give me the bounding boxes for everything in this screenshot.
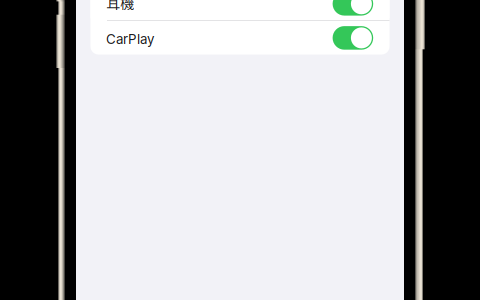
button[interactable]: CarPlay bbox=[90, 21, 389, 54]
button[interactable]: 耳機 bbox=[90, 0, 389, 20]
staticText: CarPlay bbox=[106, 31, 154, 47]
staticText: 耳機 bbox=[106, 0, 134, 12]
